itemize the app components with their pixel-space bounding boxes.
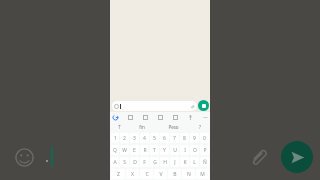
- button[interactable]: 4: [140, 133, 149, 143]
- button[interactable]: Keyboard tool 2: [142, 114, 148, 120]
- staticText: Ñ: [203, 159, 207, 166]
- button[interactable]: P: [200, 145, 209, 155]
- button[interactable]: [44, 142, 244, 172]
- staticText: Q: [113, 147, 117, 154]
- staticText: 2: [123, 135, 126, 142]
- button[interactable]: ?: [190, 122, 210, 132]
- button[interactable]: Y: [160, 145, 169, 155]
- button[interactable]: Send: [281, 141, 313, 173]
- staticText: R: [143, 147, 147, 154]
- button[interactable]: U: [170, 145, 179, 155]
- staticText: F: [143, 159, 146, 166]
- button[interactable]: T: [150, 145, 159, 155]
- button[interactable]: 9: [190, 133, 199, 143]
- button[interactable]: 8: [180, 133, 189, 143]
- button[interactable]: W: [120, 145, 129, 155]
- button[interactable]: Peso: [156, 122, 190, 132]
- button[interactable]: 5: [150, 133, 159, 143]
- button[interactable]: C: [140, 169, 153, 179]
- button[interactable]: L: [190, 157, 199, 167]
- staticText: V: [159, 171, 163, 178]
- staticText: ?: [199, 124, 201, 130]
- staticText: 8: [183, 135, 186, 142]
- button[interactable]: D: [130, 157, 139, 167]
- button[interactable]: S: [120, 157, 129, 167]
- button[interactable]: H: [160, 157, 169, 167]
- staticText: 3: [133, 135, 136, 142]
- staticText: A: [113, 159, 117, 166]
- button[interactable]: X: [126, 169, 139, 179]
- button[interactable]: 7: [170, 133, 179, 143]
- staticText: Peso: [168, 124, 179, 130]
- staticText: C: [145, 171, 149, 178]
- button[interactable]: 6: [160, 133, 169, 143]
- staticText: M: [200, 171, 205, 178]
- staticText: N: [187, 171, 191, 178]
- button[interactable]: J: [170, 157, 179, 167]
- staticText: E: [133, 147, 136, 154]
- staticText: 6: [163, 135, 166, 142]
- button[interactable]: G: [150, 157, 159, 167]
- button[interactable]: B: [168, 169, 181, 179]
- button[interactable]: Keyboard tool 0: [112, 114, 118, 120]
- button[interactable]: Keyboard tool 4: [172, 114, 178, 120]
- staticText: Y: [163, 147, 166, 154]
- staticText: D: [133, 159, 137, 166]
- button[interactable]: M: [196, 169, 209, 179]
- staticText: 5: [153, 135, 156, 142]
- staticText: J: [174, 159, 176, 166]
- staticText: 1: [114, 135, 117, 142]
- staticText: fin: [139, 124, 145, 130]
- button[interactable]: T: [110, 122, 128, 132]
- staticText: 0: [203, 135, 206, 142]
- staticText: X: [131, 171, 134, 178]
- button[interactable]: Keyboard tool 1: [127, 114, 133, 120]
- staticText: S: [123, 159, 126, 166]
- button[interactable]: 0: [200, 133, 209, 143]
- staticText: 9: [193, 135, 196, 142]
- staticText: L: [193, 159, 196, 166]
- staticText: P: [203, 147, 207, 154]
- button[interactable]: Send: [198, 100, 209, 111]
- button[interactable]: fin: [128, 122, 156, 132]
- staticText: B: [173, 171, 177, 178]
- staticText: 7: [173, 135, 176, 142]
- staticText: O: [193, 147, 197, 154]
- button[interactable]: I: [180, 145, 189, 155]
- staticText: T: [153, 147, 156, 154]
- button[interactable]: Emoji: [10, 143, 38, 171]
- button[interactable]: 2: [120, 133, 129, 143]
- button[interactable]: Attach: [244, 143, 272, 171]
- button[interactable]: V: [154, 169, 167, 179]
- staticText: 4: [143, 135, 146, 142]
- button[interactable]: K: [180, 157, 189, 167]
- button[interactable]: O: [190, 145, 199, 155]
- button[interactable]: Ñ: [200, 157, 209, 167]
- staticText: W: [122, 147, 127, 154]
- button[interactable]: 1: [111, 133, 119, 143]
- button[interactable]: A: [111, 157, 119, 167]
- button[interactable]: Q: [111, 145, 119, 155]
- button[interactable]: E: [130, 145, 139, 155]
- button[interactable]: N: [182, 169, 195, 179]
- button[interactable]: R: [140, 145, 149, 155]
- button[interactable]: Keyboard tool 3: [157, 114, 163, 120]
- staticText: I: [184, 147, 186, 154]
- staticText: U: [173, 147, 177, 154]
- button[interactable]: Keyboard tool 5: [187, 114, 193, 120]
- button[interactable]: 3: [130, 133, 139, 143]
- button[interactable]: F: [140, 157, 149, 167]
- staticText: T: [118, 124, 121, 130]
- staticText: G: [153, 159, 157, 166]
- button[interactable]: Z: [111, 169, 125, 179]
- staticText: K: [183, 159, 187, 166]
- staticText: H: [163, 159, 167, 166]
- button[interactable]: Keyboard tool 6: [202, 114, 208, 120]
- button[interactable]: [112, 101, 197, 111]
- staticText: Z: [117, 171, 120, 178]
